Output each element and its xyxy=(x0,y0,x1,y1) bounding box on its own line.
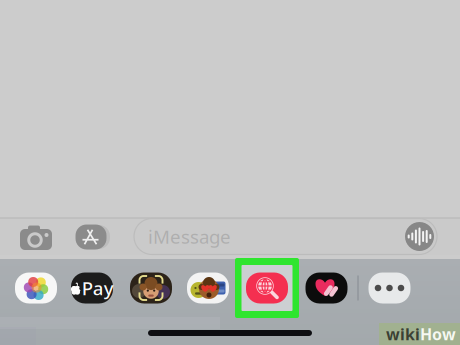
button[interactable]: Photos xyxy=(11,266,61,310)
staticText: Pay xyxy=(82,276,114,300)
button[interactable]: Camera xyxy=(19,222,53,252)
button[interactable]: Digital Touch xyxy=(301,266,351,310)
button[interactable]: #images xyxy=(235,258,299,318)
button[interactable]: App Store xyxy=(73,224,109,250)
button[interactable]: Apple Pay xyxy=(67,266,117,310)
button[interactable]: iMessage xyxy=(134,218,437,254)
button[interactable]: Memoji xyxy=(126,266,176,310)
button[interactable]: Stickers xyxy=(183,266,233,310)
button[interactable]: More apps xyxy=(364,266,414,310)
staticText: wiki xyxy=(386,323,420,345)
staticText: iMessage xyxy=(148,224,231,249)
staticText: How xyxy=(420,323,456,345)
